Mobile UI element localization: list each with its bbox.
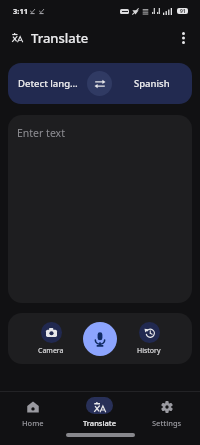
staticText: 3:11 (13, 6, 28, 16)
staticText: Home (22, 418, 44, 428)
button[interactable]: Camera (33, 322, 69, 356)
staticText: Spanish (134, 77, 170, 90)
staticText: Enter text (17, 126, 65, 140)
staticText: Detect lang… (18, 77, 78, 90)
staticText: History (137, 346, 161, 356)
button[interactable]: History (131, 322, 167, 356)
staticText: 91 (180, 8, 186, 14)
button[interactable]: Speak (83, 322, 117, 356)
button[interactable]: Swap languages (87, 71, 112, 96)
button[interactable]: Home (0, 392, 66, 430)
button[interactable]: Enter text (8, 115, 192, 303)
staticText: Camera (38, 346, 64, 356)
button[interactable]: Translate (66, 392, 133, 430)
staticText: Translate (83, 418, 116, 428)
staticText: Translate (31, 29, 89, 47)
button[interactable]: Detect lang… (8, 63, 87, 104)
staticText: Settings (152, 418, 182, 428)
button[interactable]: More options (170, 25, 196, 51)
button[interactable]: Settings (133, 392, 200, 430)
button[interactable]: Spanish (112, 63, 192, 104)
